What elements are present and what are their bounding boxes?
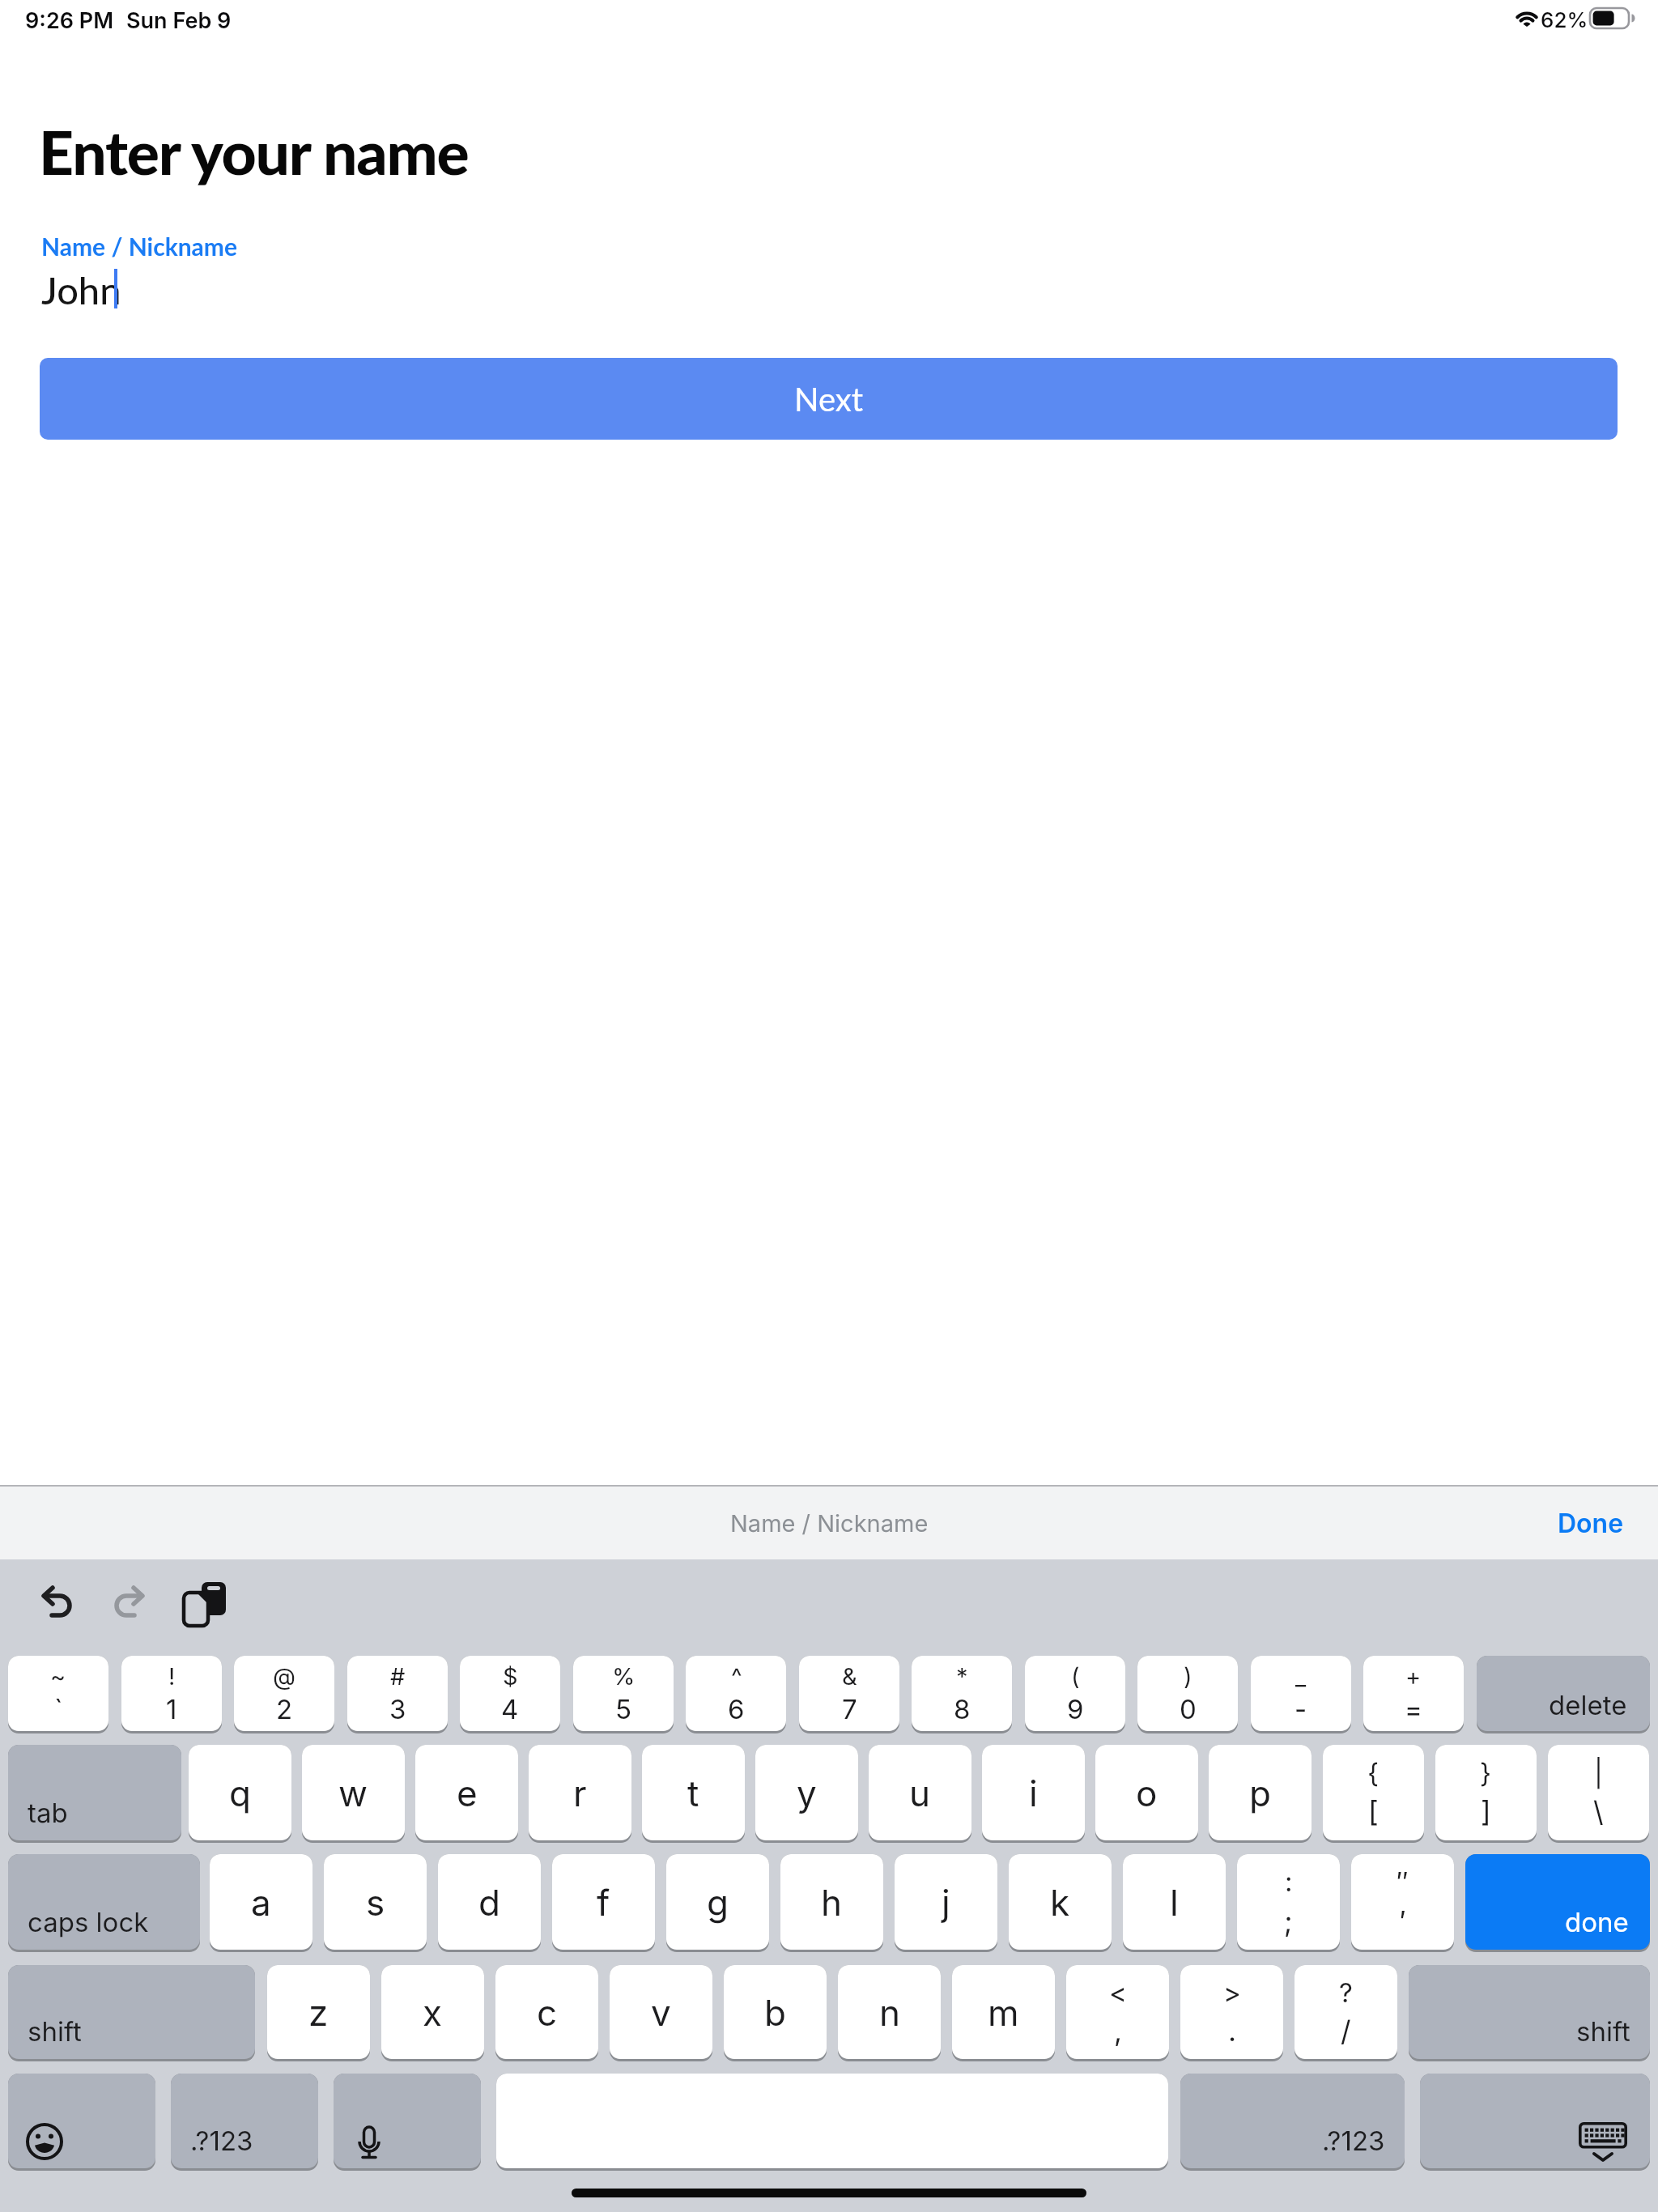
button[interactable]: p xyxy=(1209,1745,1312,1840)
staticText: u xyxy=(909,1772,931,1814)
staticText: 6 xyxy=(728,1693,745,1725)
staticText: } xyxy=(1480,1757,1492,1789)
button[interactable]: + xyxy=(1363,1656,1464,1731)
staticText: , xyxy=(1114,2014,1123,2048)
staticText: a xyxy=(251,1881,271,1924)
button[interactable]: shift xyxy=(8,1965,255,2059)
button[interactable]: % xyxy=(573,1656,674,1731)
button[interactable]: x xyxy=(381,1965,484,2059)
button[interactable]: h xyxy=(780,1854,883,1950)
staticText: k xyxy=(1050,1881,1070,1924)
staticText: Name / Nickname xyxy=(41,232,237,261)
button[interactable]: : xyxy=(1237,1854,1340,1950)
button[interactable]: j xyxy=(895,1854,997,1950)
staticText: + xyxy=(1405,1662,1422,1691)
button[interactable]: Next xyxy=(40,358,1618,440)
staticText: m xyxy=(988,1991,1019,2034)
button[interactable] xyxy=(1420,2074,1650,2168)
staticText: f xyxy=(597,1881,610,1924)
button[interactable] xyxy=(180,1579,228,1627)
button[interactable]: shift xyxy=(1409,1965,1650,2059)
staticText: ; xyxy=(1284,1904,1293,1938)
button[interactable]: u xyxy=(869,1745,971,1840)
button[interactable]: .?123 xyxy=(171,2074,318,2168)
button[interactable]: e xyxy=(415,1745,518,1840)
button[interactable]: & xyxy=(799,1656,899,1731)
button[interactable]: w xyxy=(302,1745,405,1840)
button[interactable]: f xyxy=(552,1854,655,1950)
button[interactable]: y xyxy=(755,1745,858,1840)
staticText: 0 xyxy=(1180,1693,1197,1725)
staticText: ″ xyxy=(1397,1865,1409,1898)
button[interactable]: a xyxy=(210,1854,312,1950)
button[interactable]: i xyxy=(982,1745,1085,1840)
staticText: _ xyxy=(1295,1662,1307,1691)
staticText: { xyxy=(1367,1757,1380,1789)
staticText: | xyxy=(1594,1757,1603,1789)
button[interactable]: b xyxy=(724,1965,827,2059)
staticText: r xyxy=(573,1772,587,1814)
button[interactable]: delete xyxy=(1477,1656,1650,1731)
staticText: w xyxy=(338,1772,368,1814)
staticText: x xyxy=(423,1991,443,2034)
button[interactable]: r xyxy=(529,1745,631,1840)
button[interactable]: t xyxy=(642,1745,745,1840)
button[interactable]: ! xyxy=(121,1656,222,1731)
button[interactable]: k xyxy=(1009,1854,1112,1950)
button[interactable]: c xyxy=(495,1965,598,2059)
button[interactable]: $ xyxy=(460,1656,560,1731)
staticText: ) xyxy=(1184,1662,1192,1691)
button[interactable]: m xyxy=(952,1965,1055,2059)
staticText: Sun Feb 9 xyxy=(126,7,232,34)
button[interactable]: q xyxy=(189,1745,291,1840)
button[interactable]: z xyxy=(267,1965,370,2059)
button[interactable]: ″ xyxy=(1351,1854,1454,1950)
button[interactable]: s xyxy=(324,1854,427,1950)
button[interactable]: o xyxy=(1095,1745,1198,1840)
button[interactable]: caps lock xyxy=(8,1854,200,1950)
staticText: ^ xyxy=(731,1662,742,1691)
button[interactable]: ( xyxy=(1025,1656,1125,1731)
button[interactable]: } xyxy=(1435,1745,1537,1840)
button[interactable]: _ xyxy=(1251,1656,1351,1731)
button[interactable]: Done xyxy=(1558,1508,1624,1539)
staticText: h xyxy=(821,1881,843,1924)
staticText: ? xyxy=(1339,1976,1353,2009)
button[interactable]: v xyxy=(610,1965,712,2059)
button[interactable]: n xyxy=(838,1965,941,2059)
staticText: : xyxy=(1285,1865,1293,1898)
button[interactable]: < xyxy=(1066,1965,1169,2059)
staticText: q xyxy=(229,1772,251,1814)
button[interactable]: tab xyxy=(8,1745,181,1840)
staticText: ′ xyxy=(1400,1904,1406,1938)
button[interactable]: { xyxy=(1323,1745,1424,1840)
staticText: ~ xyxy=(50,1662,66,1691)
button[interactable]: | xyxy=(1548,1745,1649,1840)
button[interactable] xyxy=(8,2074,155,2168)
button[interactable] xyxy=(334,2074,481,2168)
button[interactable]: > xyxy=(1180,1965,1283,2059)
button[interactable]: # xyxy=(347,1656,448,1731)
button[interactable] xyxy=(40,225,1618,321)
staticText: caps lock xyxy=(28,1906,149,1938)
button[interactable] xyxy=(105,1580,151,1626)
button[interactable]: ) xyxy=(1137,1656,1238,1731)
staticText: ] xyxy=(1481,1794,1491,1828)
button[interactable]: .?123 xyxy=(1180,2074,1405,2168)
button[interactable]: d xyxy=(438,1854,541,1950)
button[interactable]: ? xyxy=(1295,1965,1397,2059)
button[interactable]: ~ xyxy=(8,1656,108,1731)
button[interactable]: @ xyxy=(234,1656,334,1731)
staticText: y xyxy=(797,1772,817,1814)
staticText: ` xyxy=(54,1693,63,1725)
staticText: = xyxy=(1405,1693,1422,1725)
button[interactable]: l xyxy=(1123,1854,1226,1950)
staticText: 9 xyxy=(1067,1693,1084,1725)
button[interactable] xyxy=(36,1580,81,1626)
button[interactable]: ^ xyxy=(686,1656,786,1731)
button[interactable]: done xyxy=(1465,1854,1650,1950)
button[interactable]: * xyxy=(912,1656,1012,1731)
staticText: p xyxy=(1249,1772,1271,1814)
button[interactable]: g xyxy=(666,1854,769,1950)
